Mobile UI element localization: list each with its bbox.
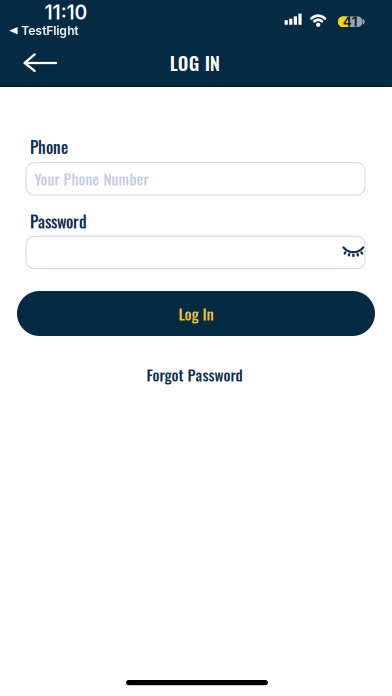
button[interactable]: Forgot Password (146, 363, 242, 386)
staticText: 11:10 (44, 1, 87, 24)
button[interactable]: Your Phone Number (26, 163, 365, 195)
staticText: Forgot Password (146, 363, 242, 386)
button[interactable]: Log In (17, 291, 375, 336)
staticText: Password (30, 209, 87, 233)
staticText: Phone (30, 135, 68, 158)
button[interactable]: Password (26, 236, 365, 269)
staticText: Your Phone Number (34, 168, 148, 190)
staticText: 41 (343, 14, 358, 30)
button[interactable]: Back to TestFlight (9, 23, 78, 38)
staticText: TestFlight (21, 23, 78, 38)
staticText: Log In (178, 302, 213, 325)
button[interactable]: Back (17, 43, 63, 83)
staticText: LOG IN (170, 49, 220, 76)
